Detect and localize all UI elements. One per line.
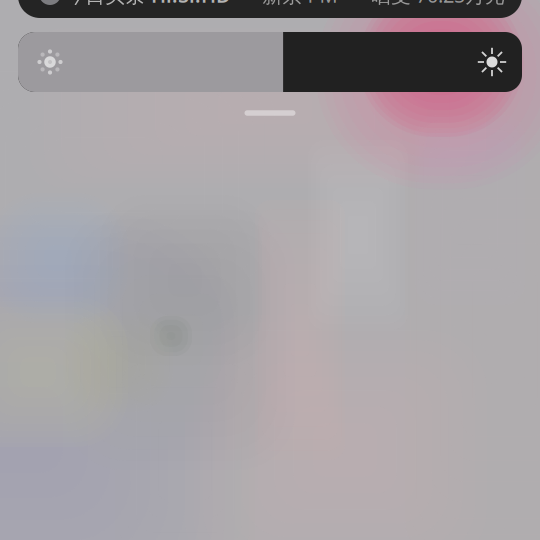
button[interactable]: 今日头条·Hi.Si.HD <box>0 0 540 540</box>
staticText: 新京·PM <box>262 0 337 8</box>
staticText: 今日头条·Hi.Si.HD <box>65 0 231 8</box>
staticText: 晒受·70.25万元 <box>371 0 505 8</box>
button[interactable]: Brightness <box>18 32 522 92</box>
